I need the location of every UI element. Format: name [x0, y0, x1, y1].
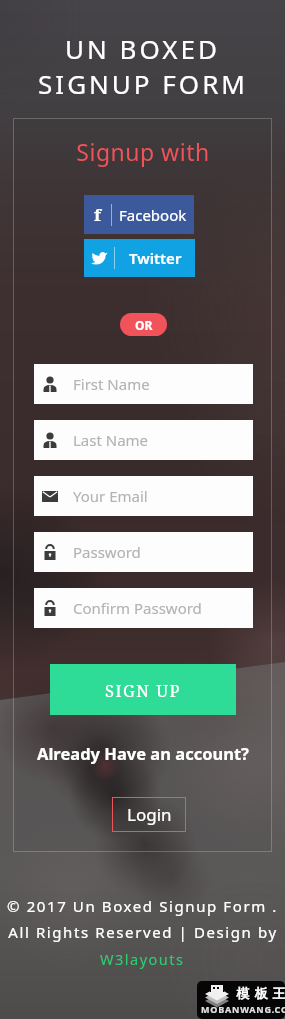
button[interactable]: Twitter: [84, 239, 195, 277]
button[interactable]: W3layouts: [100, 949, 185, 969]
button[interactable]: Your Email: [34, 476, 253, 516]
button[interactable]: SIGN UP: [50, 664, 236, 715]
staticText: Confirm Password: [73, 598, 202, 618]
button[interactable]: Password: [34, 532, 253, 572]
staticText: OR: [135, 317, 153, 333]
staticText: Twitter: [129, 248, 182, 268]
staticText: Password: [73, 542, 141, 562]
staticText: First Name: [73, 374, 150, 394]
staticText: SIGN UP: [105, 679, 181, 701]
staticText: Your Email: [73, 486, 148, 506]
staticText: 模板王: [234, 985, 285, 1001]
staticText: SIGNUP FORM: [38, 66, 248, 101]
staticText: All Rights Reserved | Design by: [8, 922, 278, 942]
button[interactable]: Last Name: [34, 420, 253, 460]
staticText: MOBANWANG.COM: [201, 1003, 285, 1019]
button[interactable]: Confirm Password: [34, 588, 253, 628]
button[interactable]: f: [84, 195, 194, 234]
staticText: Already Have an account?: [37, 742, 249, 764]
staticText: Facebook: [119, 205, 187, 225]
staticText: © 2017 Un Boxed Signup Form .: [7, 896, 278, 916]
staticText: Signup with: [76, 136, 210, 167]
staticText: f: [94, 203, 101, 226]
staticText: UN BOXED: [65, 31, 220, 66]
button[interactable]: 模板王: [197, 981, 285, 1019]
button[interactable]: First Name: [34, 364, 253, 404]
staticText: Last Name: [73, 430, 149, 450]
staticText: Login: [127, 803, 172, 826]
button[interactable]: Login: [112, 797, 186, 832]
